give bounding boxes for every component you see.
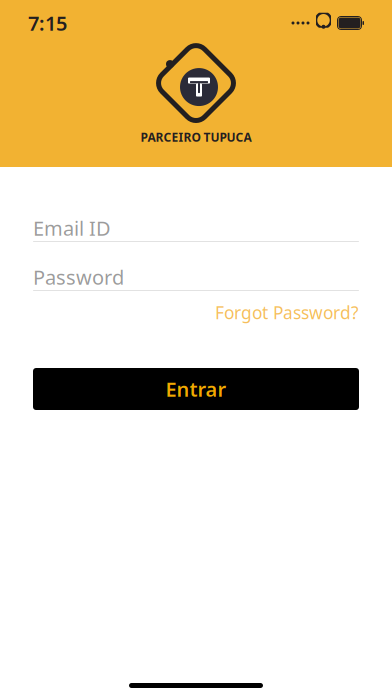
button[interactable]: Entrar [33, 368, 359, 410]
button[interactable]: Email ID [33, 215, 359, 242]
staticText: Password [33, 264, 124, 290]
staticText: PARCEIRO TUPUCA [140, 129, 251, 145]
staticText: 7:15 [28, 10, 67, 36]
button[interactable]: Password [33, 264, 359, 291]
staticText: Email ID [33, 215, 111, 241]
button[interactable]: Forgot Password? [215, 295, 359, 330]
staticText: Entrar [165, 376, 226, 402]
staticText: Forgot Password? [215, 301, 359, 324]
